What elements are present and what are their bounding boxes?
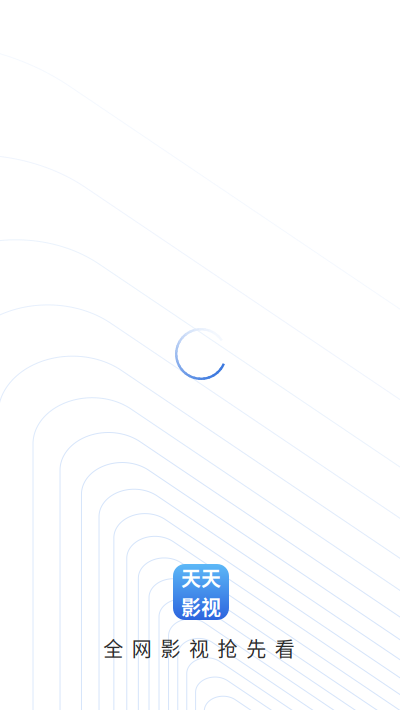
staticText: 天天 <box>181 563 221 592</box>
staticText: 全网影视抢先看 <box>103 633 295 662</box>
staticText: 影视 <box>181 592 221 621</box>
